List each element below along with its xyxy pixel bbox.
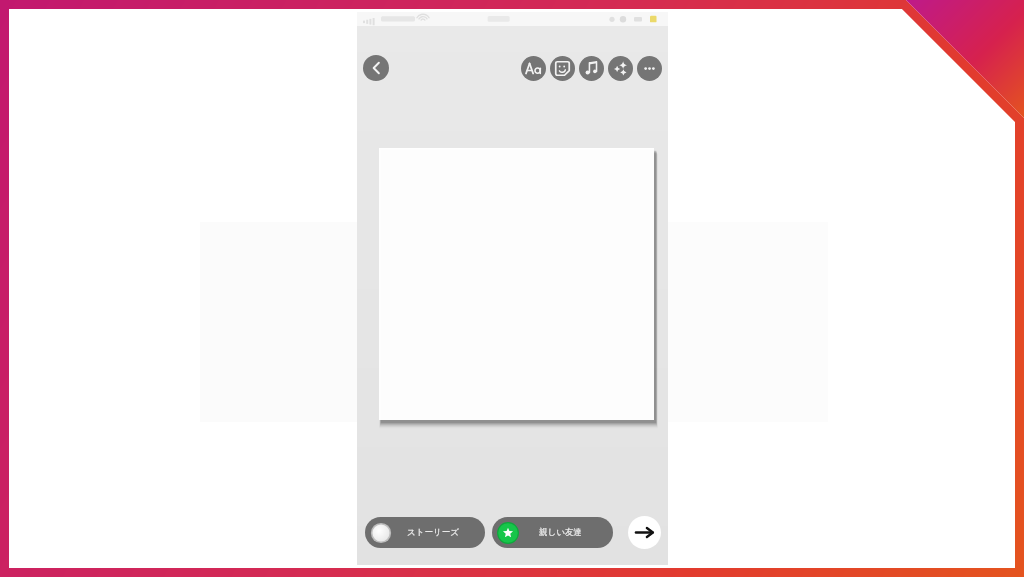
button[interactable]: Send	[628, 516, 661, 549]
staticText: 親しい友達	[539, 527, 582, 538]
button[interactable]: Back	[363, 55, 389, 81]
staticText: ストーリーズ	[407, 527, 459, 538]
button[interactable]: Stickers	[550, 56, 575, 81]
button[interactable]: ストーリーズ	[365, 517, 485, 548]
button[interactable]: Music	[579, 56, 604, 81]
button[interactable]: Effects	[608, 56, 633, 81]
button[interactable]: 親しい友達	[492, 517, 613, 548]
button[interactable]: More options	[637, 56, 662, 81]
button[interactable]: Text	[521, 56, 546, 81]
